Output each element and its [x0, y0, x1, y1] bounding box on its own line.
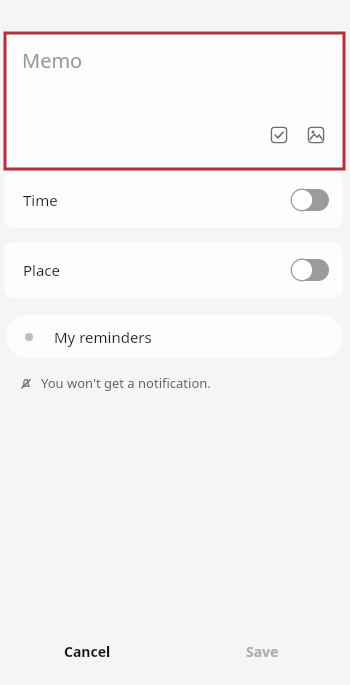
button[interactable]: Memo	[4, 31, 343, 169]
button[interactable]: Save	[175, 624, 350, 678]
button[interactable]: Place	[4, 242, 343, 298]
button[interactable]: My reminders	[6, 315, 343, 358]
button[interactable]: Time toggle	[291, 189, 329, 211]
staticText: Place	[23, 260, 61, 280]
staticText: My reminders	[54, 327, 152, 347]
staticText: Cancel	[64, 642, 111, 661]
staticText: You won't get a notification.	[41, 374, 211, 392]
button[interactable]: Cancel	[0, 624, 175, 678]
button[interactable]: Add image	[302, 121, 330, 149]
staticText: Memo	[22, 47, 83, 74]
button[interactable]: Add checklist	[265, 121, 293, 149]
staticText: Save	[246, 642, 279, 661]
staticText: Time	[23, 190, 58, 210]
button[interactable]: Time	[4, 172, 343, 228]
button[interactable]: Place toggle	[291, 259, 329, 281]
